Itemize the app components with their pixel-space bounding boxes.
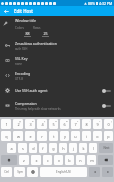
button[interactable]: i [82,131,91,141]
staticText: 1 [5,122,8,127]
button[interactable]: 88 [24,31,31,37]
staticText: & [66,119,68,122]
staticText: i [86,134,87,139]
button[interactable]: r [37,131,47,141]
button[interactable]: u [71,131,80,141]
button[interactable]: d [29,143,37,153]
staticText: g [52,146,55,151]
button[interactable]: Encoding [0,68,114,83]
button[interactable]: w [13,131,23,141]
staticText: y [64,134,66,139]
button[interactable]: Back [0,6,12,16]
button[interactable]: Backspace [98,155,113,165]
staticText: 3 [29,122,32,127]
button[interactable]: 3 [25,119,35,129]
staticText: r [41,134,43,139]
button[interactable]: c [43,155,52,165]
staticText: Sym [17,170,23,174]
staticText: Window title [15,18,37,23]
button[interactable]: SSL Key [0,53,114,68]
button[interactable]: Settings [27,167,38,177]
button[interactable]: Window title [0,16,114,38]
button[interactable]: q [1,131,11,141]
staticText: This may help with slow networks [15,107,61,111]
button[interactable]: 6 [60,119,69,129]
staticText: c [47,158,49,163]
button[interactable]: 25 [42,31,49,37]
button[interactable]: n [76,155,85,165]
button[interactable]: Use SSH auth agent [0,83,114,98]
staticText: m [90,158,94,163]
staticText: Ctrl [4,170,9,174]
staticText: English(US) [56,170,71,174]
button[interactable]: Ctrl [1,167,12,177]
button[interactable]: p [104,131,113,141]
staticText: ( [111,119,112,122]
button[interactable]: j [69,143,77,153]
staticText: s [22,146,24,151]
button[interactable]: x [31,155,41,165]
staticText: a [10,146,13,151]
staticText: # [32,119,34,122]
staticText: 7 [74,122,77,127]
staticText: 2 [17,122,20,127]
button[interactable]: a [7,143,16,153]
staticText: Edit Host [14,8,33,14]
staticText: u [74,134,77,139]
staticText: Zeszukiwa authentication [15,41,57,46]
staticText: * [77,119,79,122]
staticText: Compression [15,101,37,106]
staticText: 6 [63,122,66,127]
staticText: 88 [24,31,31,36]
button[interactable]: 2 [13,119,23,129]
staticText: + [99,119,101,122]
staticText: 9 [96,122,99,127]
staticText: Encoding [15,71,31,76]
button[interactable]: Zeszukiwa authentication [0,38,114,53]
staticText: Use SSH auth agent [15,88,48,93]
staticText: j [73,146,74,151]
button[interactable]: Compression [0,98,114,113]
button[interactable]: z [19,155,29,165]
button[interactable]: k [79,143,87,153]
staticText: 8 [85,122,88,127]
button[interactable]: 7 [71,119,80,129]
button[interactable]: o [93,131,102,141]
staticText: 4 [41,122,44,127]
button[interactable]: 8 [82,119,91,129]
button[interactable]: v [54,155,63,165]
button[interactable]: y [60,131,69,141]
button[interactable]: 5 [49,119,58,129]
staticText: @ [19,119,22,122]
button[interactable]: 1 [1,119,11,129]
button[interactable]: m [87,155,96,165]
staticText: z [23,158,25,163]
button[interactable]: b [65,155,74,165]
button[interactable]: s [18,143,27,153]
button[interactable]: Left [89,167,100,177]
button[interactable]: 0 [104,119,113,129]
button[interactable]: g [49,143,57,153]
button[interactable]: t [49,131,58,141]
button[interactable]: l [89,143,97,153]
staticText: n [79,158,82,163]
staticText: f [42,146,44,151]
button[interactable]: Shift [1,155,17,165]
staticText: Next [103,146,110,150]
button[interactable]: Sym [14,167,25,177]
button[interactable]: English(US) [40,167,87,177]
staticText: UTF-8 [15,77,23,81]
staticText: x [35,158,38,163]
staticText: - [89,119,90,122]
button[interactable]: 9 [93,119,102,129]
button[interactable]: Next [99,143,113,153]
staticText: $ [44,119,46,122]
staticText: p [107,134,110,139]
button[interactable]: e [25,131,35,141]
staticText: k [82,146,85,151]
button[interactable]: h [59,143,67,153]
button[interactable]: f [39,143,47,153]
button[interactable]: Right [102,167,113,177]
staticText: 88% [88,1,95,6]
button[interactable]: 4 [37,119,47,129]
